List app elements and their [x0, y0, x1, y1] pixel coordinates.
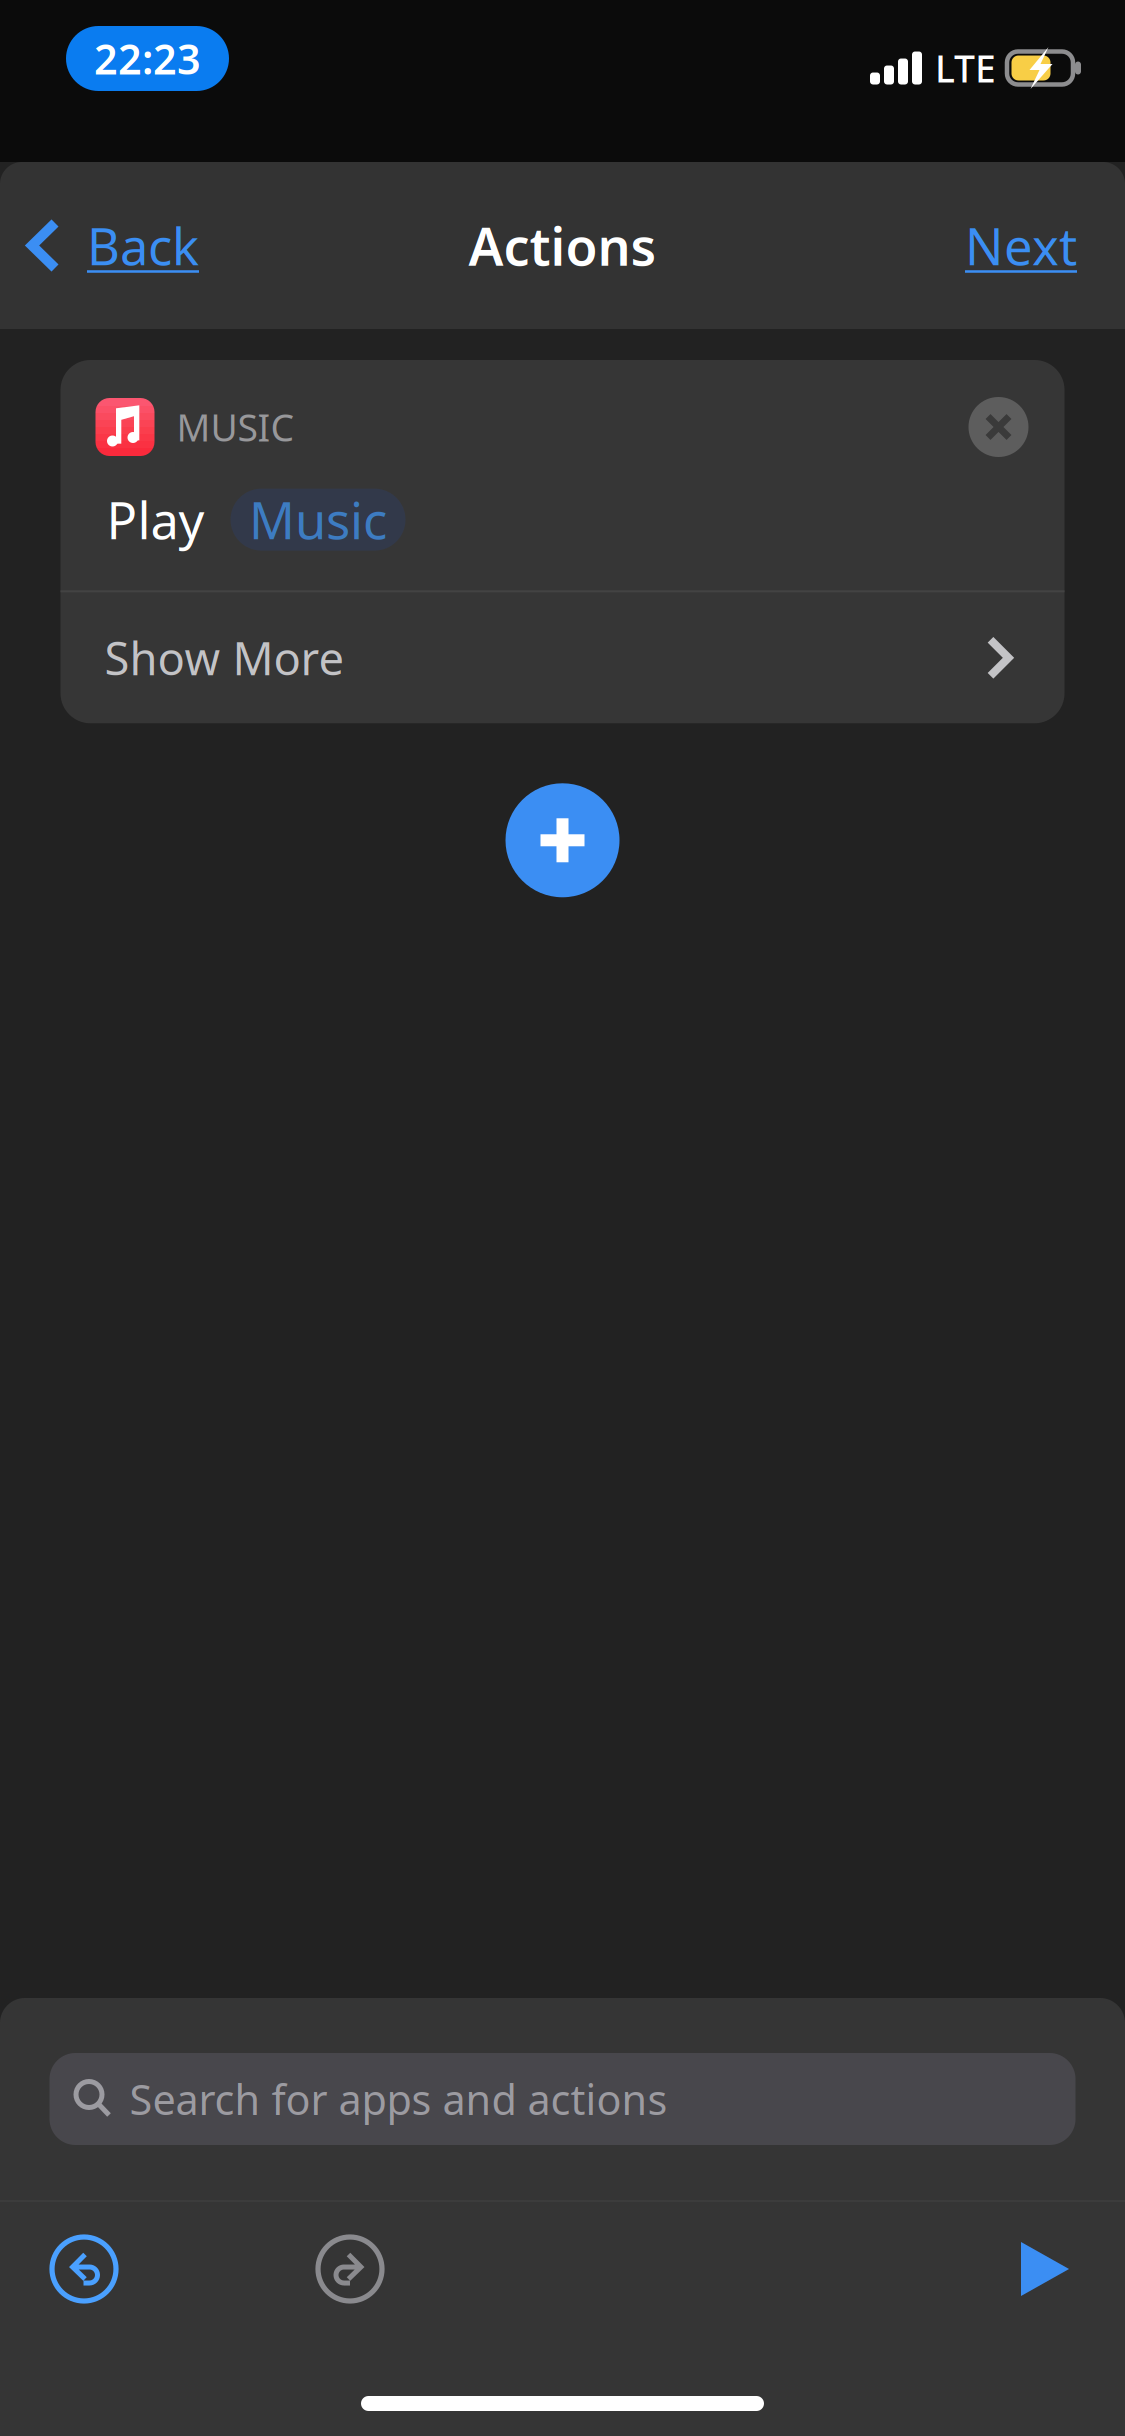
button[interactable]: Search for apps and actions [49, 2053, 1075, 2145]
button[interactable]: Back [0, 162, 223, 329]
staticText: Back [87, 212, 199, 279]
button[interactable]: Next [941, 162, 1125, 329]
button[interactable]: Music [230, 489, 405, 551]
button[interactable]: Run shortcut [991, 2202, 1125, 2336]
staticText: Next [965, 212, 1077, 279]
button[interactable]: Redo [298, 2202, 402, 2336]
staticText: LTE [935, 43, 996, 93]
button[interactable]: Show More [60, 592, 1064, 723]
staticText: Music [249, 486, 387, 553]
staticText: Actions [468, 211, 656, 280]
staticText: Search for apps and actions [129, 2072, 667, 2126]
button[interactable]: Remove action [968, 397, 1028, 457]
staticText: MUSIC [176, 402, 294, 452]
staticText: Show More [104, 628, 344, 688]
staticText: Play [106, 486, 204, 553]
staticText: 22:23 [94, 31, 201, 86]
button[interactable]: Add action [505, 783, 619, 897]
button[interactable]: Undo [32, 2202, 136, 2336]
